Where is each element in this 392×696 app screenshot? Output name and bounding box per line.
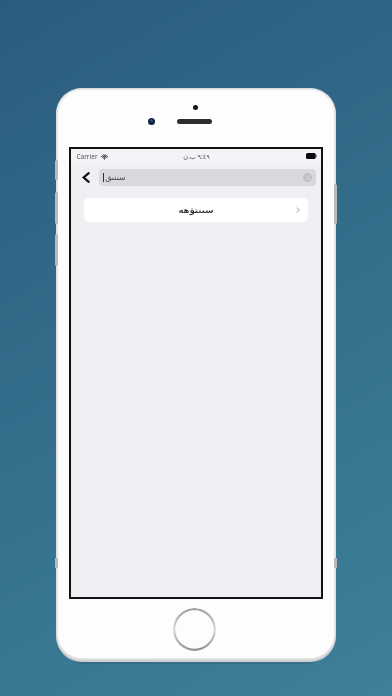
staticText: ٩:٤٩ ب.ن bbox=[183, 152, 210, 161]
staticText: سىنىق bbox=[105, 173, 126, 182]
button[interactable]: Clear text bbox=[303, 173, 312, 182]
staticText: سىنتۆھە bbox=[178, 205, 214, 215]
staticText: Carrier bbox=[76, 152, 98, 161]
button[interactable]: سىنىق bbox=[99, 169, 316, 186]
button[interactable]: Back bbox=[76, 167, 96, 187]
button[interactable]: سىنتۆھە bbox=[84, 198, 308, 222]
button[interactable]: Home bbox=[173, 608, 216, 651]
